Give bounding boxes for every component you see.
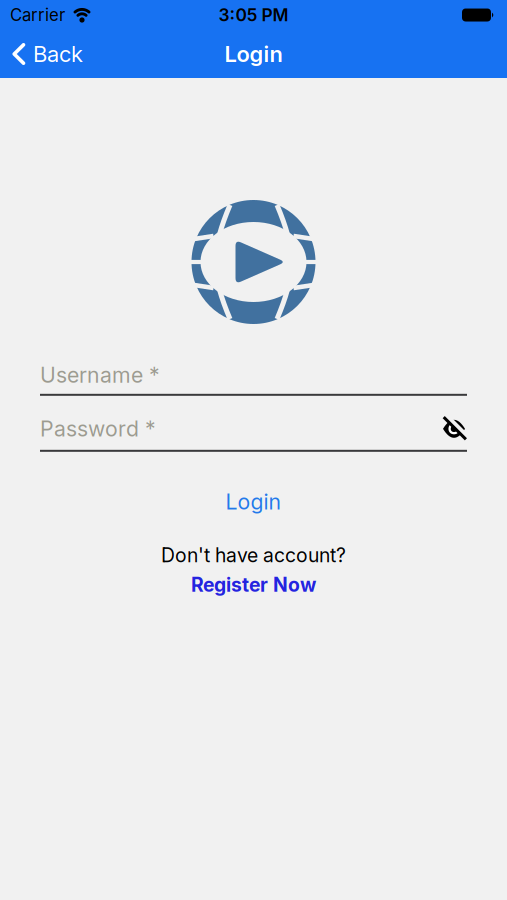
button[interactable]: Register Now	[179, 573, 328, 596]
staticText: Password *	[40, 416, 156, 442]
staticText: Don't have account?	[161, 544, 346, 567]
button[interactable]: Login	[205, 489, 301, 515]
button[interactable]: Show password	[441, 416, 467, 442]
staticText: Register Now	[191, 573, 316, 596]
textField[interactable]: Username *	[40, 362, 467, 388]
staticText: Login	[224, 41, 282, 67]
button[interactable]: Back	[0, 41, 83, 67]
staticText: Login	[225, 489, 281, 515]
staticText: 3:05 PM	[218, 4, 288, 25]
staticText: Back	[33, 41, 83, 67]
staticText: Carrier	[10, 5, 65, 25]
staticText: Username *	[40, 362, 160, 388]
secureTextField[interactable]: Password *	[40, 416, 240, 442]
